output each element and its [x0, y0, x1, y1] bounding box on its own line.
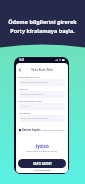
staticText: Kartın arkasındaki 3 hane	[21, 117, 49, 120]
staticText: ödeme altyapısı ile güvence altında	[26, 150, 58, 153]
staticText: 0000 0000 0000 0000	[21, 93, 44, 96]
staticText: iyzico	[36, 143, 49, 149]
button[interactable]: Back	[17, 67, 23, 73]
staticText: Yeni Kart Ekle	[31, 67, 54, 72]
staticText: CVV Kodu	[19, 111, 31, 114]
button[interactable]: KARTI KAYDET	[18, 159, 66, 168]
staticText: Kart sahibinin adı soyadı	[21, 81, 48, 84]
staticText: Kartımı kaydet	[22, 128, 41, 131]
staticText: Kart Sahibinin Adı	[19, 75, 40, 78]
button[interactable]: Kartın arkasındaki 3 hane	[19, 115, 65, 122]
staticText: AA / YY	[21, 105, 29, 108]
staticText: ödemelerimi hızlandır	[42, 128, 65, 131]
button[interactable]: Kartımı kaydet	[19, 128, 65, 131]
staticText: Kart No	[19, 87, 28, 90]
staticText: Son Kullanma Tarihi	[19, 99, 42, 102]
button[interactable]: 0000 0000 0000 0000	[19, 91, 65, 98]
staticText: KARTI KAYDET	[33, 162, 52, 166]
staticText: 9:41	[19, 58, 25, 62]
button[interactable]: Kart sahibinin adı soyadı	[19, 79, 65, 86]
staticText: Ödeme bilgilerini girerek Porty kiralama…	[8, 18, 77, 35]
button[interactable]: AA / YY	[19, 103, 65, 110]
